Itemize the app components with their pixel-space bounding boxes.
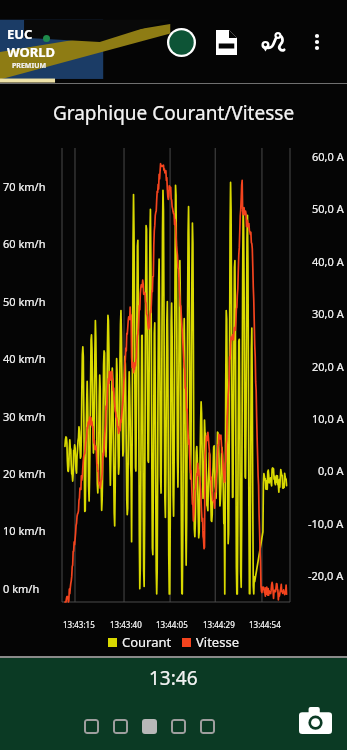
staticText: 40 km/h: [3, 351, 46, 366]
button[interactable]: Page 4: [171, 719, 186, 734]
staticText: PREMIUM: [12, 61, 47, 71]
staticText: 30 km/h: [3, 409, 46, 424]
staticText: 50 km/h: [3, 294, 46, 309]
staticText: 0,0 A: [318, 463, 344, 478]
staticText: 0 km/h: [3, 581, 40, 596]
staticText: 13:44:29: [203, 619, 235, 630]
staticText: 10,0 A: [312, 411, 344, 426]
staticText: 10 km/h: [3, 523, 46, 538]
staticText: Vitesse: [196, 633, 239, 651]
button[interactable]: Page 1: [84, 719, 99, 734]
staticText: WORLD: [7, 43, 56, 61]
button[interactable]: Export CSV: [207, 23, 245, 61]
staticText: 70 km/h: [3, 179, 46, 194]
staticText: EUC: [7, 25, 33, 43]
staticText: 40,0 A: [312, 254, 344, 269]
button[interactable]: More options: [299, 24, 335, 60]
staticText: 50,0 A: [312, 201, 344, 216]
staticText: 13:43:15: [63, 619, 95, 630]
staticText: 60,0 A: [312, 149, 344, 164]
button[interactable]: Take screenshot: [292, 697, 338, 743]
button[interactable]: Record: [162, 23, 200, 61]
staticText: Courant: [122, 633, 172, 651]
staticText: 60 km/h: [3, 236, 46, 251]
staticText: 20 km/h: [3, 466, 46, 481]
staticText: 13:43:40: [110, 619, 142, 630]
staticText: 30,0 A: [312, 306, 344, 321]
staticText: 13:44:54: [249, 619, 281, 630]
staticText: 13:46: [149, 665, 198, 691]
staticText: Graphique Courant/Vitesse: [0, 100, 347, 126]
button[interactable]: Route: [254, 23, 292, 61]
staticText: 13:44:05: [156, 619, 188, 630]
button[interactable]: Page 3: [142, 719, 157, 734]
button[interactable]: Page 5: [200, 719, 215, 734]
staticText: -20,0 A: [308, 568, 344, 583]
staticText: -10,0 A: [308, 516, 344, 531]
button[interactable]: Page 2: [113, 719, 128, 734]
staticText: 20,0 A: [312, 359, 344, 374]
